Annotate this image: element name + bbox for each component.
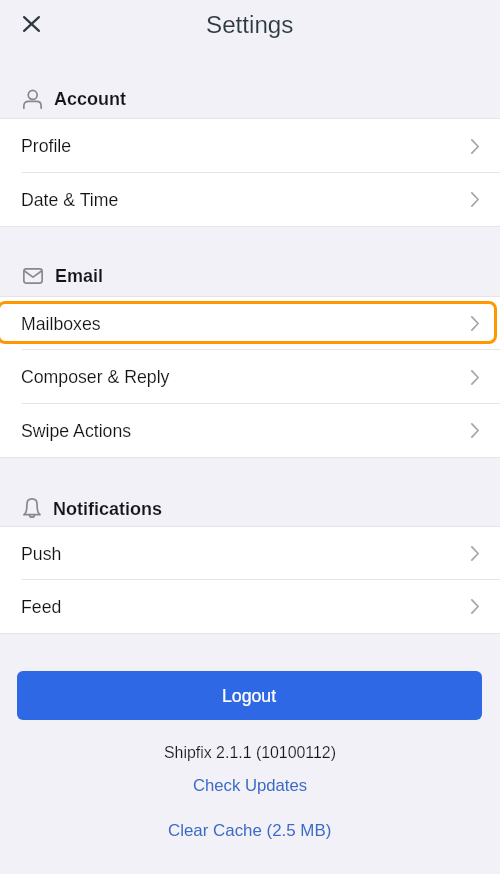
staticText: Email	[55, 266, 104, 286]
staticText: Feed	[21, 597, 62, 617]
staticText: Composer & Reply	[21, 367, 170, 387]
staticText: Profile	[21, 136, 72, 156]
staticText: Shipfix 2.1.1 (10100112)	[0, 744, 500, 762]
button[interactable]: Date & Time	[0, 173, 500, 226]
button[interactable]: Clear Cache (2.5 MB)	[158, 818, 342, 843]
staticText: Account	[54, 89, 126, 109]
staticText: Push	[21, 544, 62, 564]
staticText: Logout	[222, 686, 277, 706]
button[interactable]: Close	[13, 5, 50, 42]
button[interactable]: Feed	[0, 580, 500, 633]
staticText: Date & Time	[21, 190, 119, 210]
staticText: Swipe Actions	[21, 421, 132, 441]
button[interactable]: Logout	[17, 671, 482, 720]
button[interactable]: Swipe Actions	[0, 404, 500, 457]
staticText: Settings	[206, 11, 294, 38]
staticText: Mailboxes	[21, 314, 101, 334]
staticText: Notifications	[53, 499, 163, 519]
button[interactable]: Composer & Reply	[0, 350, 500, 404]
button[interactable]: Push	[0, 527, 500, 580]
button[interactable]: Profile	[0, 119, 500, 173]
button[interactable]: Check Updates	[183, 773, 318, 798]
button[interactable]: Mailboxes	[0, 297, 500, 350]
